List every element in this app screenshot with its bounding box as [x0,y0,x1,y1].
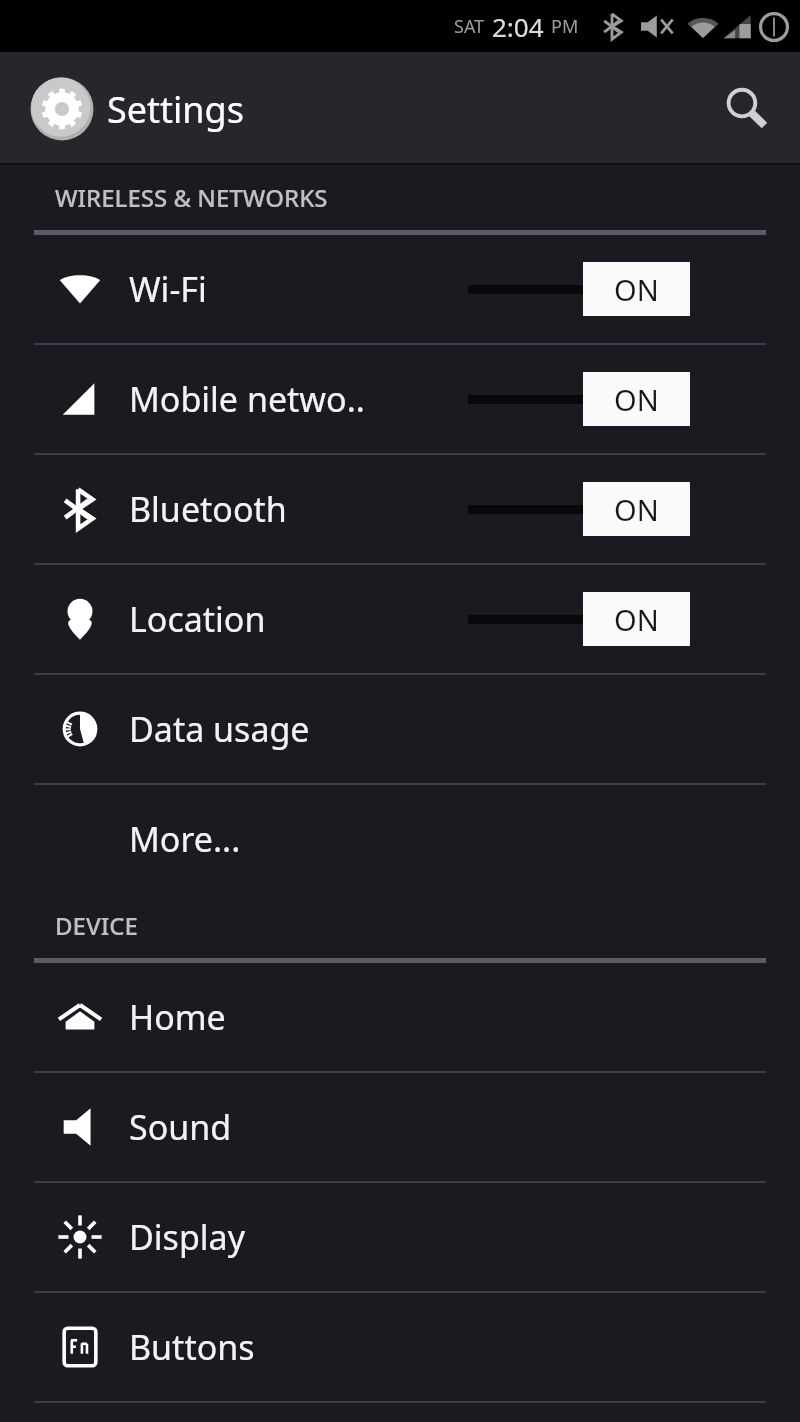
button[interactable]: ON [468,260,690,318]
staticText: Bluetooth [129,486,287,532]
button[interactable]: Location [0,565,800,673]
button[interactable]: Bluetooth [0,455,800,563]
button[interactable]: More... [0,785,800,893]
staticText: Data usage [129,706,310,752]
staticText: Settings [107,85,244,134]
button[interactable]: Mobile netwo.. [0,345,800,453]
staticText: Buttons [129,1324,255,1370]
staticText: Wi-Fi [129,266,207,312]
staticText: ON [614,270,659,309]
staticText: Home [129,994,226,1040]
staticText: Mobile netwo.. [129,376,365,422]
button[interactable]: Wi-Fi [0,235,800,343]
button[interactable]: Settings [27,74,244,144]
staticText: DEVICE [55,909,138,942]
staticText: ON [614,490,659,529]
staticText: Display [129,1214,245,1260]
staticText: ON [614,380,659,419]
staticText: ON [614,600,659,639]
button[interactable]: Home [0,963,800,1071]
staticText: WIRELESS & NETWORKS [55,181,328,214]
button[interactable]: Data usage [0,675,800,783]
button[interactable]: ON [468,590,690,648]
staticText: Sound [129,1104,232,1150]
button[interactable]: Sound [0,1073,800,1181]
button[interactable]: ON [468,480,690,538]
staticText: SAT [454,14,485,39]
button[interactable]: Search [710,72,784,146]
button[interactable]: Display [0,1183,800,1291]
staticText: 2:04 [492,9,544,44]
staticText: More... [129,816,241,862]
staticText: Location [129,596,266,642]
staticText: PM [551,14,579,39]
button[interactable]: Buttons [0,1293,800,1401]
button[interactable]: ON [468,370,690,428]
